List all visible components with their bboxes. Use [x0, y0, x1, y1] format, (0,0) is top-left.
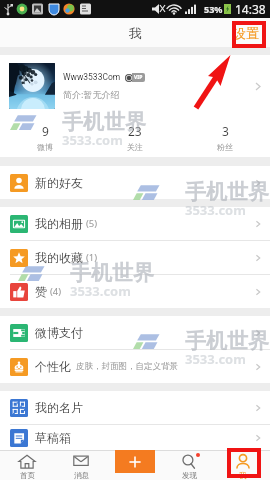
button[interactable]: 9 [0, 117, 90, 157]
staticText: 手机世界 [70, 260, 154, 286]
staticText: 微博支付 [35, 325, 83, 340]
staticText: 发现 [182, 471, 197, 480]
button[interactable]: Www3533Com [0, 63, 270, 109]
staticText: 简介:暂无介绍 [63, 88, 120, 100]
button[interactable]: 我的相册 [0, 207, 270, 240]
button[interactable]: 草稿箱 [0, 425, 270, 450]
staticText: 皮肤，封面图，自定义背景 [76, 361, 178, 372]
staticText: 我的名片 [35, 400, 83, 415]
staticText: 新的好友 [35, 175, 83, 190]
button[interactable]: 我的名片 [0, 391, 270, 424]
button[interactable]: 设置 [230, 23, 262, 43]
staticText: 赞 [35, 284, 47, 299]
button[interactable]: 微博支付 [0, 316, 270, 349]
staticText: 消息 [74, 471, 89, 480]
staticText: 手机世界 [62, 109, 146, 135]
staticText: Www3533Com [63, 72, 121, 82]
staticText: 粉丝 [217, 142, 233, 152]
staticText: (5) [86, 217, 98, 230]
staticText: (1) [86, 251, 98, 264]
button[interactable]: 消息 [54, 450, 108, 480]
staticText: 3533.com [185, 350, 246, 368]
staticText: 手机世界 [185, 328, 269, 354]
button[interactable]: 个性化 [0, 350, 270, 383]
button[interactable]: 首页 [0, 450, 54, 480]
staticText: (4) [50, 285, 62, 298]
staticText: 微博 [37, 142, 53, 152]
staticText: 草稿箱 [35, 430, 71, 445]
staticText: 我 [239, 471, 247, 480]
staticText: 手机世界 [185, 179, 269, 205]
staticText: 14:38 [235, 1, 266, 17]
staticText: 3 [222, 123, 229, 139]
staticText: 设置 [233, 25, 259, 41]
staticText: 23 [128, 123, 142, 139]
button[interactable]: 我的收藏 [0, 241, 270, 274]
staticText: 首页 [20, 471, 35, 480]
button[interactable]: 赞 [0, 275, 270, 308]
staticText: 3533.com [185, 201, 246, 219]
staticText: 我 [129, 25, 142, 41]
staticText: 个性化 [35, 359, 71, 374]
staticText: 我的收藏 [35, 250, 83, 265]
button[interactable]: 新的好友 [0, 166, 270, 199]
button[interactable]: Compose [115, 450, 155, 473]
button[interactable]: 23 [90, 117, 180, 157]
button[interactable]: 发现 [162, 450, 216, 480]
staticText: 9 [42, 123, 49, 139]
staticText: 53% [204, 3, 223, 15]
staticText: VIP [134, 74, 143, 81]
staticText: 3533.com [70, 282, 131, 300]
button[interactable]: 我 [216, 450, 270, 480]
button[interactable]: 3 [180, 117, 270, 157]
staticText: 关注 [127, 142, 143, 152]
staticText: 我的相册 [35, 216, 83, 231]
staticText: 3533.com [62, 131, 123, 149]
